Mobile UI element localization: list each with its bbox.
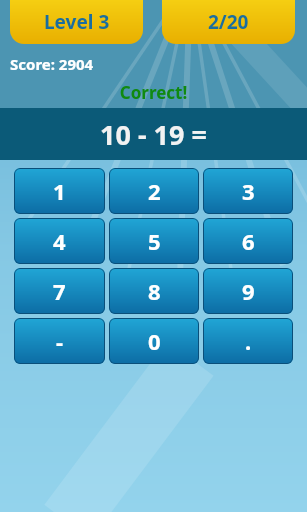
button[interactable]: Key 6 bbox=[203, 218, 293, 264]
staticText: Level 3 bbox=[44, 9, 110, 35]
staticText: 8 bbox=[148, 276, 161, 306]
staticText: 1 bbox=[53, 176, 66, 206]
staticText: 5 bbox=[148, 226, 161, 256]
staticText: 2/20 bbox=[208, 9, 249, 35]
button[interactable]: 2/20 bbox=[162, 0, 295, 44]
staticText: 9 bbox=[242, 276, 255, 306]
button[interactable]: Key 0 bbox=[109, 318, 199, 364]
button[interactable]: Key 5 bbox=[109, 218, 199, 264]
button[interactable]: Key 4 bbox=[14, 218, 105, 264]
staticText: 7 bbox=[53, 276, 66, 306]
button[interactable]: Key 7 bbox=[14, 268, 105, 314]
button[interactable]: Key 8 bbox=[109, 268, 199, 314]
staticText: 3 bbox=[242, 176, 255, 206]
button[interactable]: Key 3 bbox=[203, 168, 293, 214]
staticText: 2 bbox=[148, 176, 161, 206]
staticText: 4 bbox=[53, 226, 66, 256]
staticText: Score: 2904 bbox=[10, 54, 94, 74]
button[interactable]: Key . bbox=[203, 318, 293, 364]
staticText: Correct! bbox=[0, 81, 307, 104]
button[interactable]: Key 9 bbox=[203, 268, 293, 314]
button[interactable]: Level 3 bbox=[10, 0, 143, 44]
staticText: 6 bbox=[242, 226, 255, 256]
staticText: - bbox=[56, 326, 64, 356]
staticText: 10 - 19 = bbox=[100, 116, 207, 153]
staticText: . bbox=[245, 326, 252, 356]
button[interactable]: Key 1 bbox=[14, 168, 105, 214]
button[interactable]: Key - bbox=[14, 318, 105, 364]
button[interactable]: Key 2 bbox=[109, 168, 199, 214]
staticText: 0 bbox=[148, 326, 161, 356]
